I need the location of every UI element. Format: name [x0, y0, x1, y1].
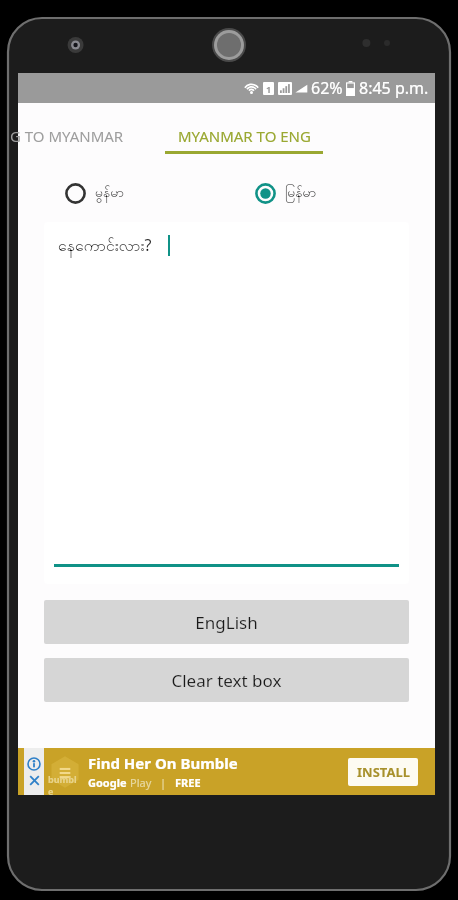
button[interactable]: MYANMAR TO ENG	[165, 125, 323, 158]
button[interactable]: Clear text box	[44, 658, 409, 702]
staticText: Find Her On Bumble	[88, 753, 238, 773]
staticText: FREE	[175, 775, 201, 790]
staticText: နေကောင်းလား?	[58, 234, 152, 259]
staticText: Google	[88, 775, 127, 790]
staticText: 8:45 p.m.	[359, 77, 429, 99]
staticText: 1	[266, 83, 272, 95]
staticText: Clear text box	[171, 669, 282, 692]
staticText: G TO MYANMAR	[10, 126, 124, 146]
button[interactable]: G TO MYANMAR	[18, 125, 153, 158]
staticText: Play	[130, 775, 152, 790]
button[interactable]: မြန်မာ	[255, 183, 317, 204]
other: Ad information	[27, 757, 41, 771]
staticText: MYANMAR TO ENG	[178, 126, 311, 146]
staticText: မြန်မာ	[285, 183, 317, 204]
button[interactable]: မွန်မာ	[65, 183, 124, 204]
staticText: မွန်မာ	[95, 183, 124, 204]
button[interactable]: Ad information	[18, 748, 435, 795]
button[interactable]: EngLish	[44, 600, 409, 644]
other: Close ad	[28, 774, 41, 787]
staticText: 62%	[311, 77, 343, 99]
staticText: |	[160, 775, 167, 790]
button[interactable]: နေကောင်းလား?	[44, 222, 409, 584]
staticText: EngLish	[195, 611, 258, 634]
staticText: INSTALL	[357, 763, 410, 781]
button[interactable]: INSTALL	[348, 758, 418, 786]
staticText: bumble	[48, 773, 82, 797]
